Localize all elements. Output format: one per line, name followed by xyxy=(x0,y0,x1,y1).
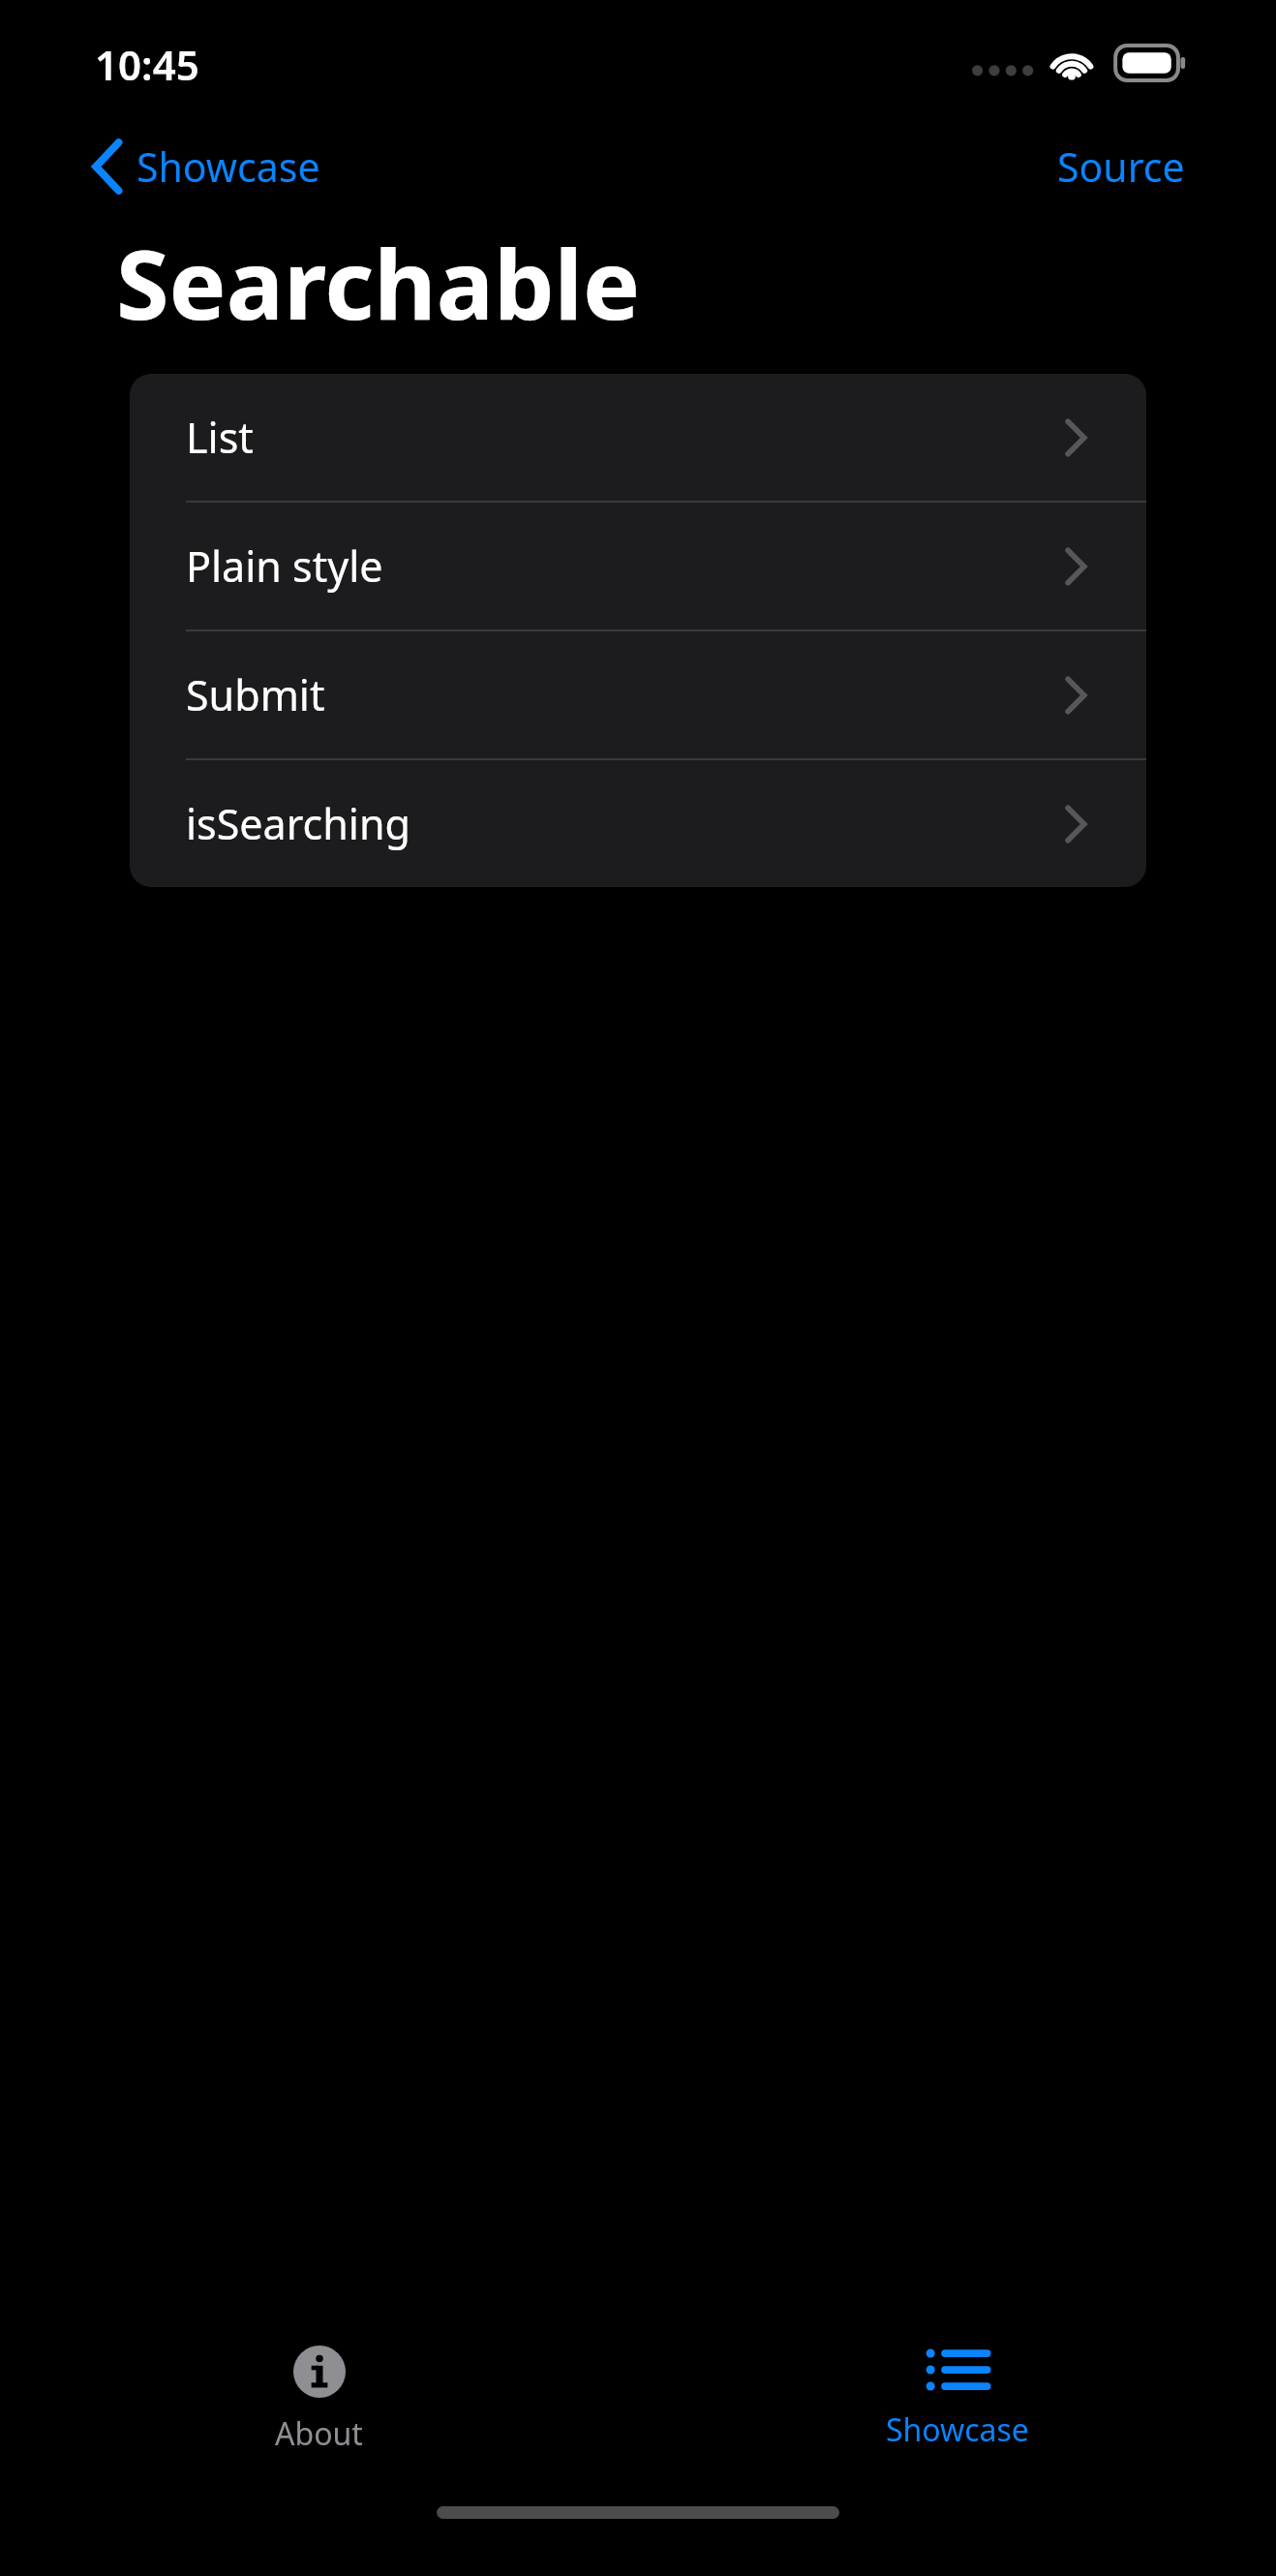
button[interactable]: Submit xyxy=(130,631,1146,758)
button[interactable]: Source xyxy=(1026,126,1276,207)
button[interactable]: isSearching xyxy=(130,760,1146,887)
button[interactable]: About xyxy=(232,2336,406,2465)
staticText: Plain style xyxy=(186,537,864,595)
staticText: List xyxy=(186,409,864,466)
staticText: Searchable xyxy=(116,217,641,339)
button[interactable]: Showcase xyxy=(843,2336,1072,2461)
other: Showcase xyxy=(925,2346,990,2394)
button[interactable]: List xyxy=(130,374,1146,501)
staticText: Source xyxy=(1057,139,1185,194)
other: About xyxy=(293,2346,346,2398)
staticText: Showcase xyxy=(886,2408,1029,2451)
staticText: Showcase xyxy=(137,139,320,194)
staticText: 10:45 xyxy=(95,37,199,92)
button[interactable]: Showcase xyxy=(0,126,346,207)
button[interactable]: Plain style xyxy=(130,503,1146,629)
staticText: isSearching xyxy=(186,795,864,852)
staticText: About xyxy=(275,2412,363,2455)
staticText: Submit xyxy=(186,666,864,723)
